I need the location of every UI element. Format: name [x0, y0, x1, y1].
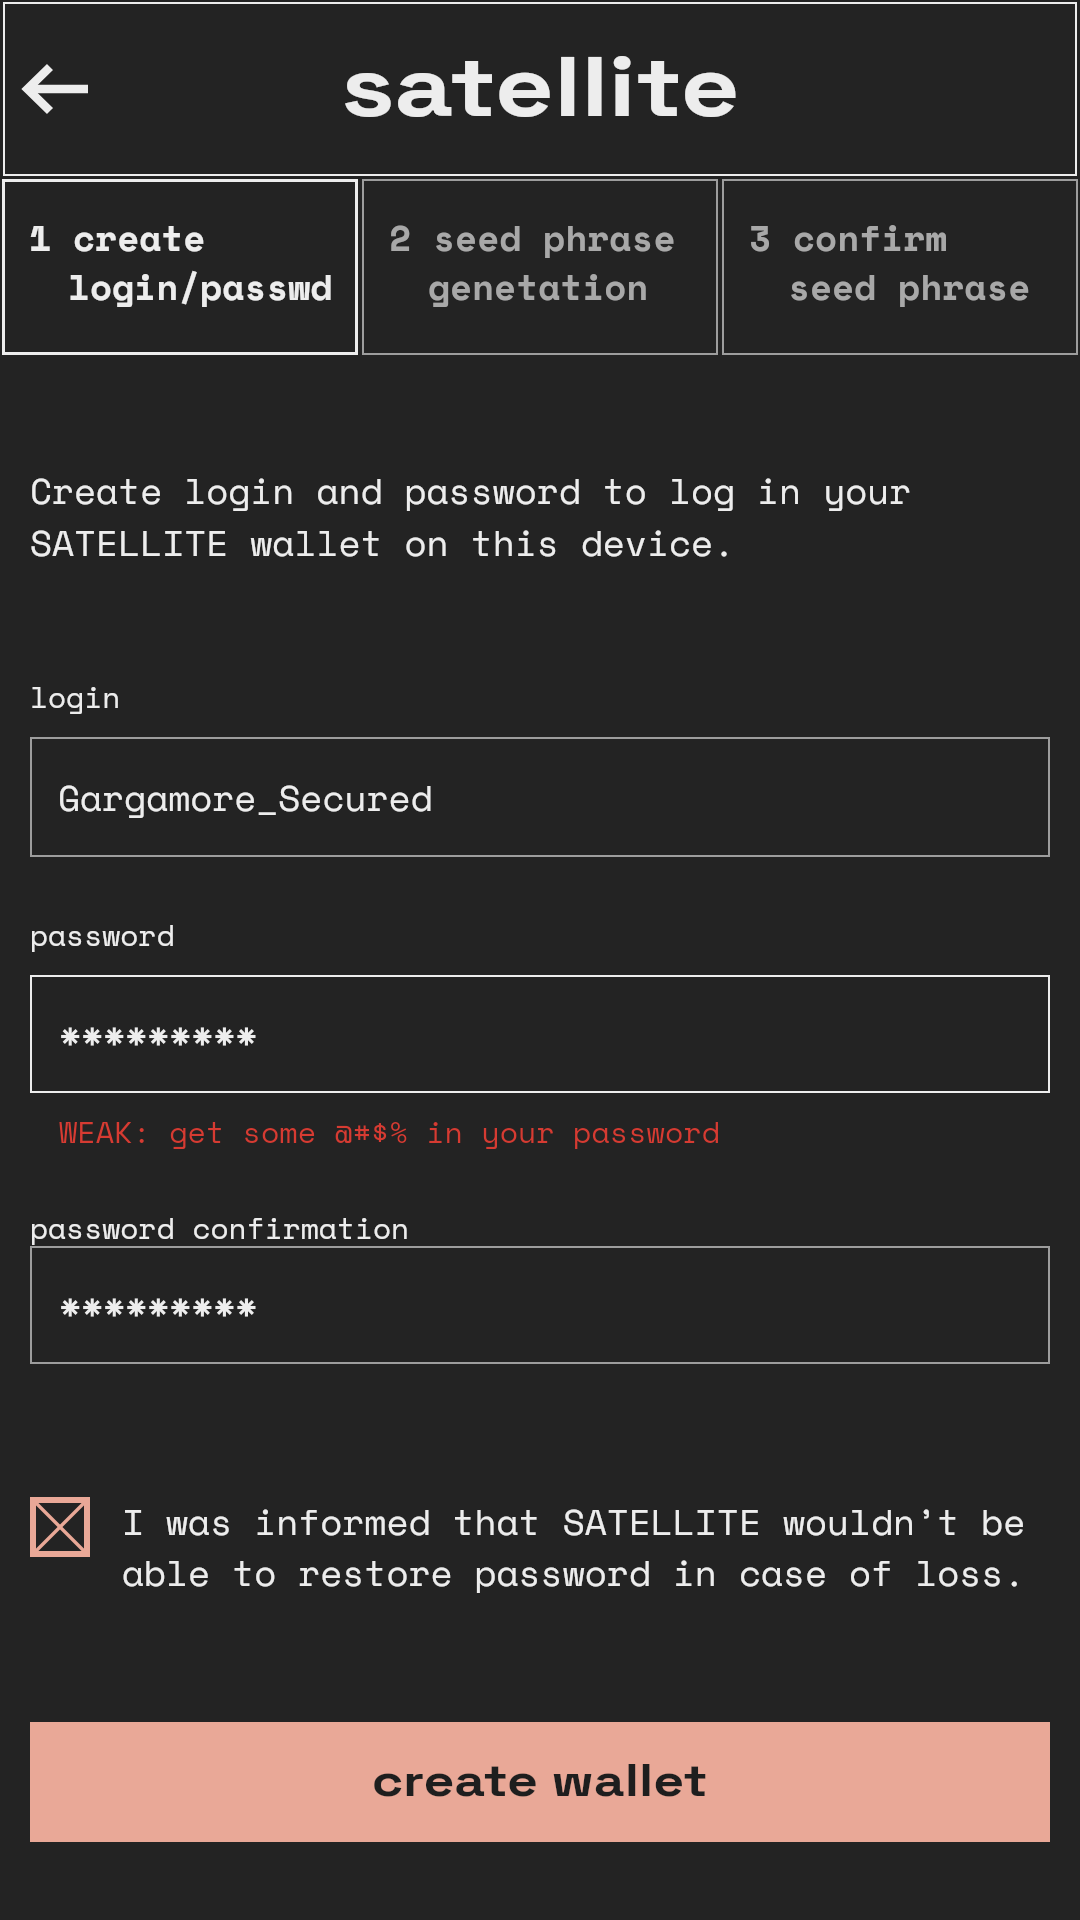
staticText: login/passwd	[68, 260, 333, 313]
button[interactable]: password	[30, 1246, 1050, 1364]
button[interactable]: 2 seed phrase	[362, 179, 718, 355]
staticText: 1 create	[29, 211, 206, 264]
staticText: password	[30, 913, 175, 957]
staticText: I was informed that SATELLITE wouldn’t b…	[122, 1495, 1026, 1599]
staticText: satellite	[341, 33, 740, 140]
button[interactable]: Gargamore_Secured	[30, 737, 1050, 857]
staticText: Create login and password to log in your…	[30, 464, 912, 569]
staticText: create wallet	[372, 1753, 708, 1809]
button[interactable]: create wallet	[30, 1722, 1050, 1842]
staticText: login	[30, 675, 121, 719]
staticText: password confirmation	[30, 1206, 410, 1250]
staticText: WEAK: get some @#$% in your password	[59, 1109, 720, 1153]
button[interactable]: password	[30, 975, 1050, 1093]
button[interactable]: I was informed that SATELLITE wouldn’t b…	[30, 1495, 1058, 1599]
staticText: Gargamore_Secured	[58, 771, 433, 824]
button[interactable]: Back	[7, 39, 107, 139]
staticText: 2 seed phrase	[389, 211, 676, 264]
staticText: 3 confirm	[749, 211, 948, 264]
staticText: genetation	[428, 260, 649, 313]
staticText: seed phrase	[788, 260, 1031, 313]
button[interactable]: 3 confirm	[722, 179, 1078, 355]
button[interactable]: 1 create	[2, 179, 358, 355]
